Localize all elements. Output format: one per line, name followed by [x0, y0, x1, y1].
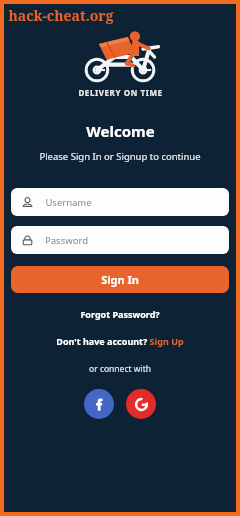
staticText: Don't have account? Sign Up [56, 335, 184, 347]
button[interactable]: Password [11, 226, 229, 254]
staticText: Password [45, 234, 88, 247]
staticText: hack-cheat.org [8, 6, 114, 25]
button[interactable]: Sign in with Facebook [84, 389, 114, 419]
staticText: Welcome [86, 121, 155, 141]
staticText: Username [45, 196, 92, 209]
button[interactable]: Forgot Password? [74, 306, 166, 322]
button[interactable]: Don't have account? Sign Up [50, 333, 190, 349]
staticText: Sign In [101, 272, 139, 287]
button[interactable]: Sign In [11, 266, 229, 293]
staticText: Please Sign In or Signup to continue [39, 150, 201, 163]
staticText: DELIVERY ON TIME [78, 87, 163, 98]
staticText: or connect with [89, 363, 151, 375]
button[interactable]: Sign in with Google [126, 389, 156, 419]
button[interactable]: Username [11, 188, 229, 216]
staticText: Forgot Password? [80, 308, 160, 320]
